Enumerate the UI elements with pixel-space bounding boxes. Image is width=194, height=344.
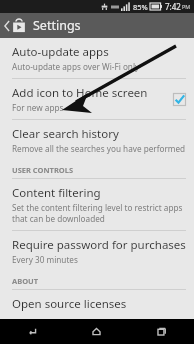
staticText: 7:42: [165, 1, 181, 12]
staticText: Open source licenses: [12, 296, 127, 312]
button[interactable]: Add icon to Home screen toggle: [173, 93, 186, 106]
staticText: Set the content filtering level to restr…: [12, 202, 186, 224]
staticText: PM: [182, 3, 191, 10]
button[interactable]: Content filtering: [0, 179, 194, 230]
staticText: Require password for purchases: [12, 237, 186, 253]
staticText: Remove all the searches you have perform…: [12, 143, 186, 154]
staticText: Content filtering: [12, 185, 101, 201]
button[interactable]: Recent apps: [129, 319, 194, 344]
staticText: Clear search history: [12, 126, 119, 142]
button[interactable]: Back: [0, 319, 64, 344]
staticText: USER CONTROLS: [12, 165, 74, 175]
button[interactable]: Add icon to Home screen: [0, 79, 194, 119]
staticText: Auto-update apps over Wi-Fi only: [12, 61, 140, 72]
staticText: Auto-update apps: [12, 44, 109, 60]
staticText: Add icon to Home screen: [12, 85, 148, 101]
staticText: 85%: [133, 2, 148, 12]
button[interactable]: Back: [0, 13, 194, 38]
button[interactable]: Open source licenses: [0, 290, 194, 319]
button[interactable]: Auto-update apps: [0, 38, 194, 78]
staticText: For new apps: [12, 102, 64, 113]
button[interactable]: Clear search history: [0, 120, 194, 160]
staticText: ABOUT: [12, 276, 39, 286]
staticText: Settings: [33, 17, 81, 34]
button[interactable]: Home: [64, 319, 129, 344]
staticText: Every 30 minutes: [12, 254, 78, 265]
other: Back: [4, 21, 10, 31]
button[interactable]: Require password for purchases: [0, 231, 194, 271]
